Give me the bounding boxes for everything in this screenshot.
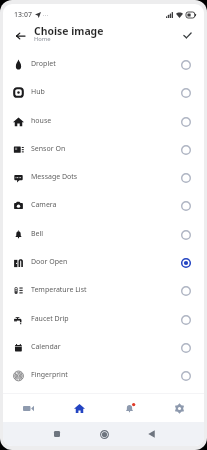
staticText: Droplet xyxy=(31,59,56,69)
button[interactable]: Droplet xyxy=(3,51,204,79)
staticText: 13:07 xyxy=(14,10,32,20)
staticText: Sensor On xyxy=(31,144,66,154)
staticText: Camera xyxy=(31,200,57,210)
button[interactable]: house xyxy=(3,108,204,136)
button[interactable]: Camera xyxy=(3,192,204,220)
staticText: Bell xyxy=(31,229,44,239)
button[interactable]: Message Dots xyxy=(3,164,204,192)
staticText: Choise image xyxy=(34,24,104,38)
button[interactable]: Settings xyxy=(154,394,204,422)
button[interactable]: Home xyxy=(95,425,113,443)
button[interactable]: Door Open xyxy=(3,249,204,277)
button[interactable]: Temperature List xyxy=(3,277,204,305)
staticText: Message Dots xyxy=(31,172,78,182)
button[interactable]: Back xyxy=(11,27,29,45)
button[interactable]: Bell xyxy=(3,221,204,249)
button[interactable]: Recents xyxy=(48,425,66,443)
staticText: Fingerprint xyxy=(31,370,68,380)
staticText: Calendar xyxy=(31,342,61,352)
staticText: house xyxy=(31,116,52,126)
button[interactable]: Faucet Drip xyxy=(3,306,204,334)
button[interactable]: Calendar xyxy=(3,334,204,362)
staticText: Home xyxy=(34,35,51,43)
button[interactable]: Back xyxy=(142,425,160,443)
staticText: Door Open xyxy=(31,257,68,267)
button[interactable]: Fingerprint xyxy=(3,362,204,390)
button[interactable]: Home xyxy=(54,394,104,422)
button[interactable]: Sensor On xyxy=(3,136,204,164)
staticText: Faucet Drip xyxy=(31,314,69,324)
staticText: Temperature List xyxy=(31,285,87,295)
button[interactable]: Notifications xyxy=(104,394,154,422)
button[interactable]: Hub xyxy=(3,79,204,107)
staticText: Hub xyxy=(31,87,45,97)
button[interactable]: Video xyxy=(3,394,54,422)
button[interactable]: Confirm xyxy=(178,26,196,44)
